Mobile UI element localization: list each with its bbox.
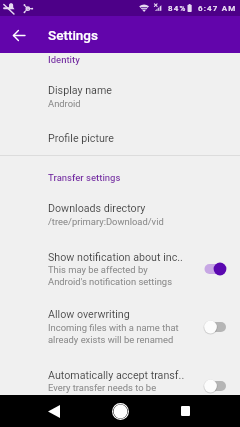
staticText: Transfer settings [48, 172, 121, 183]
staticText: Profile picture [48, 132, 114, 145]
button[interactable]: Toggle on [204, 261, 228, 277]
staticText: Android [48, 98, 81, 109]
button[interactable]: Back [38, 395, 70, 427]
button[interactable]: Toggle off [204, 319, 228, 335]
button[interactable] [0, 196, 240, 233]
button[interactable] [0, 363, 240, 395]
button[interactable]: Toggle off [204, 378, 228, 394]
staticText: already exists will be renamed [48, 334, 174, 345]
staticText: Automatically accept transf.. [48, 369, 185, 382]
staticText: Settings [48, 27, 98, 43]
staticText: /tree/primary:Download/vid [48, 216, 164, 227]
staticText: This may be affected by [48, 264, 148, 275]
staticText: Every transfer needs to be [48, 382, 157, 393]
staticText: Identity [48, 54, 80, 65]
staticText: Display name [48, 84, 112, 97]
button[interactable]: Home [104, 395, 136, 427]
staticText: 6:47 AM [198, 4, 237, 13]
button[interactable]: Navigate up [5, 21, 33, 49]
button[interactable] [0, 303, 240, 350]
button[interactable] [0, 78, 240, 115]
staticText: Allow overwriting [48, 308, 130, 321]
button[interactable] [0, 126, 240, 155]
button[interactable]: Recent apps [169, 395, 201, 427]
staticText: Show notification about inc.. [48, 251, 183, 264]
staticText: Incoming files with a name that [48, 322, 179, 333]
staticText: Downloads directory [48, 202, 146, 215]
button[interactable] [0, 245, 240, 292]
staticText: Android's notification settings [48, 276, 172, 287]
staticText: 84% [168, 4, 187, 13]
